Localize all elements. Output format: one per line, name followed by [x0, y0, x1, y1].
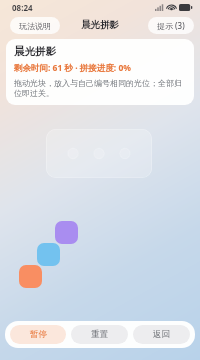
button[interactable]: 暂停 [10, 325, 66, 344]
staticText: 08:24 [12, 2, 33, 13]
staticText: 剩余时间: 61 秒 · 拼接进度: 0% [14, 62, 131, 74]
staticText: 拖动光块，放入与自己编号相同的光位；全部归位即过关。 [14, 78, 186, 99]
staticText: 重置 [91, 329, 108, 340]
staticText: 晨光拼影 [81, 19, 119, 31]
button[interactable]: Block 2 [37, 243, 60, 266]
button[interactable]: 返回 [133, 325, 190, 344]
button[interactable]: 晨光拼影 [6, 39, 194, 105]
staticText: 提示 (3) [157, 20, 185, 31]
button[interactable]: Block 3 [55, 221, 78, 244]
button[interactable]: 玩法说明 [10, 17, 60, 34]
staticText: 返回 [153, 329, 170, 340]
staticText: 晨光拼影 [14, 45, 56, 58]
button[interactable]: 提示 (3) [148, 17, 194, 34]
button[interactable] [46, 129, 152, 178]
staticText: 玩法说明 [19, 21, 51, 31]
staticText: 暂停 [30, 329, 47, 340]
button[interactable]: Block 1 [19, 265, 42, 288]
button[interactable]: 重置 [71, 325, 128, 344]
